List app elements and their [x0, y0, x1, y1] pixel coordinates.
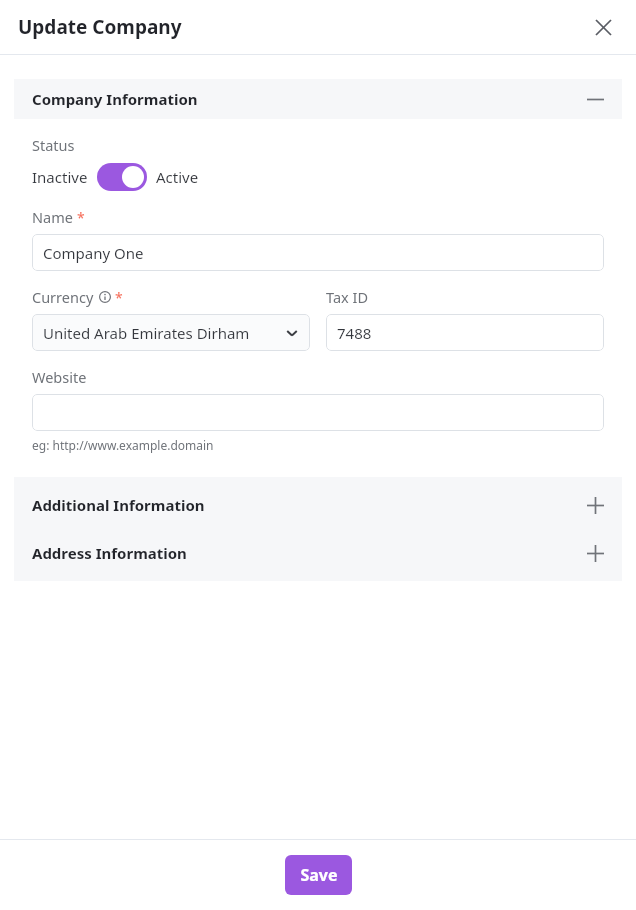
- button[interactable]: [32, 394, 604, 431]
- staticText: Website: [32, 367, 87, 387]
- staticText: Active: [156, 167, 199, 187]
- staticText: Save: [300, 864, 338, 886]
- staticText: United Arab Emirates Dirham: [43, 323, 285, 343]
- button[interactable]: Inactive: [32, 163, 199, 191]
- staticText: Update Company: [18, 14, 588, 40]
- staticText: Inactive: [32, 167, 88, 187]
- staticText: *: [115, 288, 123, 307]
- staticText: Currency: [32, 287, 94, 307]
- button[interactable]: Address Information: [14, 533, 622, 573]
- staticText: Tax ID: [326, 287, 368, 307]
- button[interactable]: Additional Information: [14, 485, 622, 525]
- staticText: 7488: [337, 323, 593, 343]
- other: Collapse: [587, 91, 604, 108]
- staticText: Status: [32, 135, 75, 155]
- staticText: Name: [32, 207, 73, 227]
- staticText: eg: http://www.example.domain: [32, 437, 214, 453]
- button[interactable]: Close: [588, 12, 618, 42]
- other: Expand: [587, 497, 604, 514]
- other: Expand: [587, 545, 604, 562]
- button[interactable]: Save: [285, 855, 352, 895]
- staticText: Company Information: [32, 89, 587, 109]
- button[interactable]: United Arab Emirates Dirham: [32, 314, 310, 351]
- staticText: *: [77, 208, 85, 227]
- staticText: Company One: [43, 243, 593, 263]
- button[interactable]: Company Information: [14, 79, 622, 119]
- button[interactable]: Company One: [32, 234, 604, 271]
- staticText: Address Information: [32, 543, 587, 563]
- button[interactable]: 7488: [326, 314, 604, 351]
- staticText: Additional Information: [32, 495, 587, 515]
